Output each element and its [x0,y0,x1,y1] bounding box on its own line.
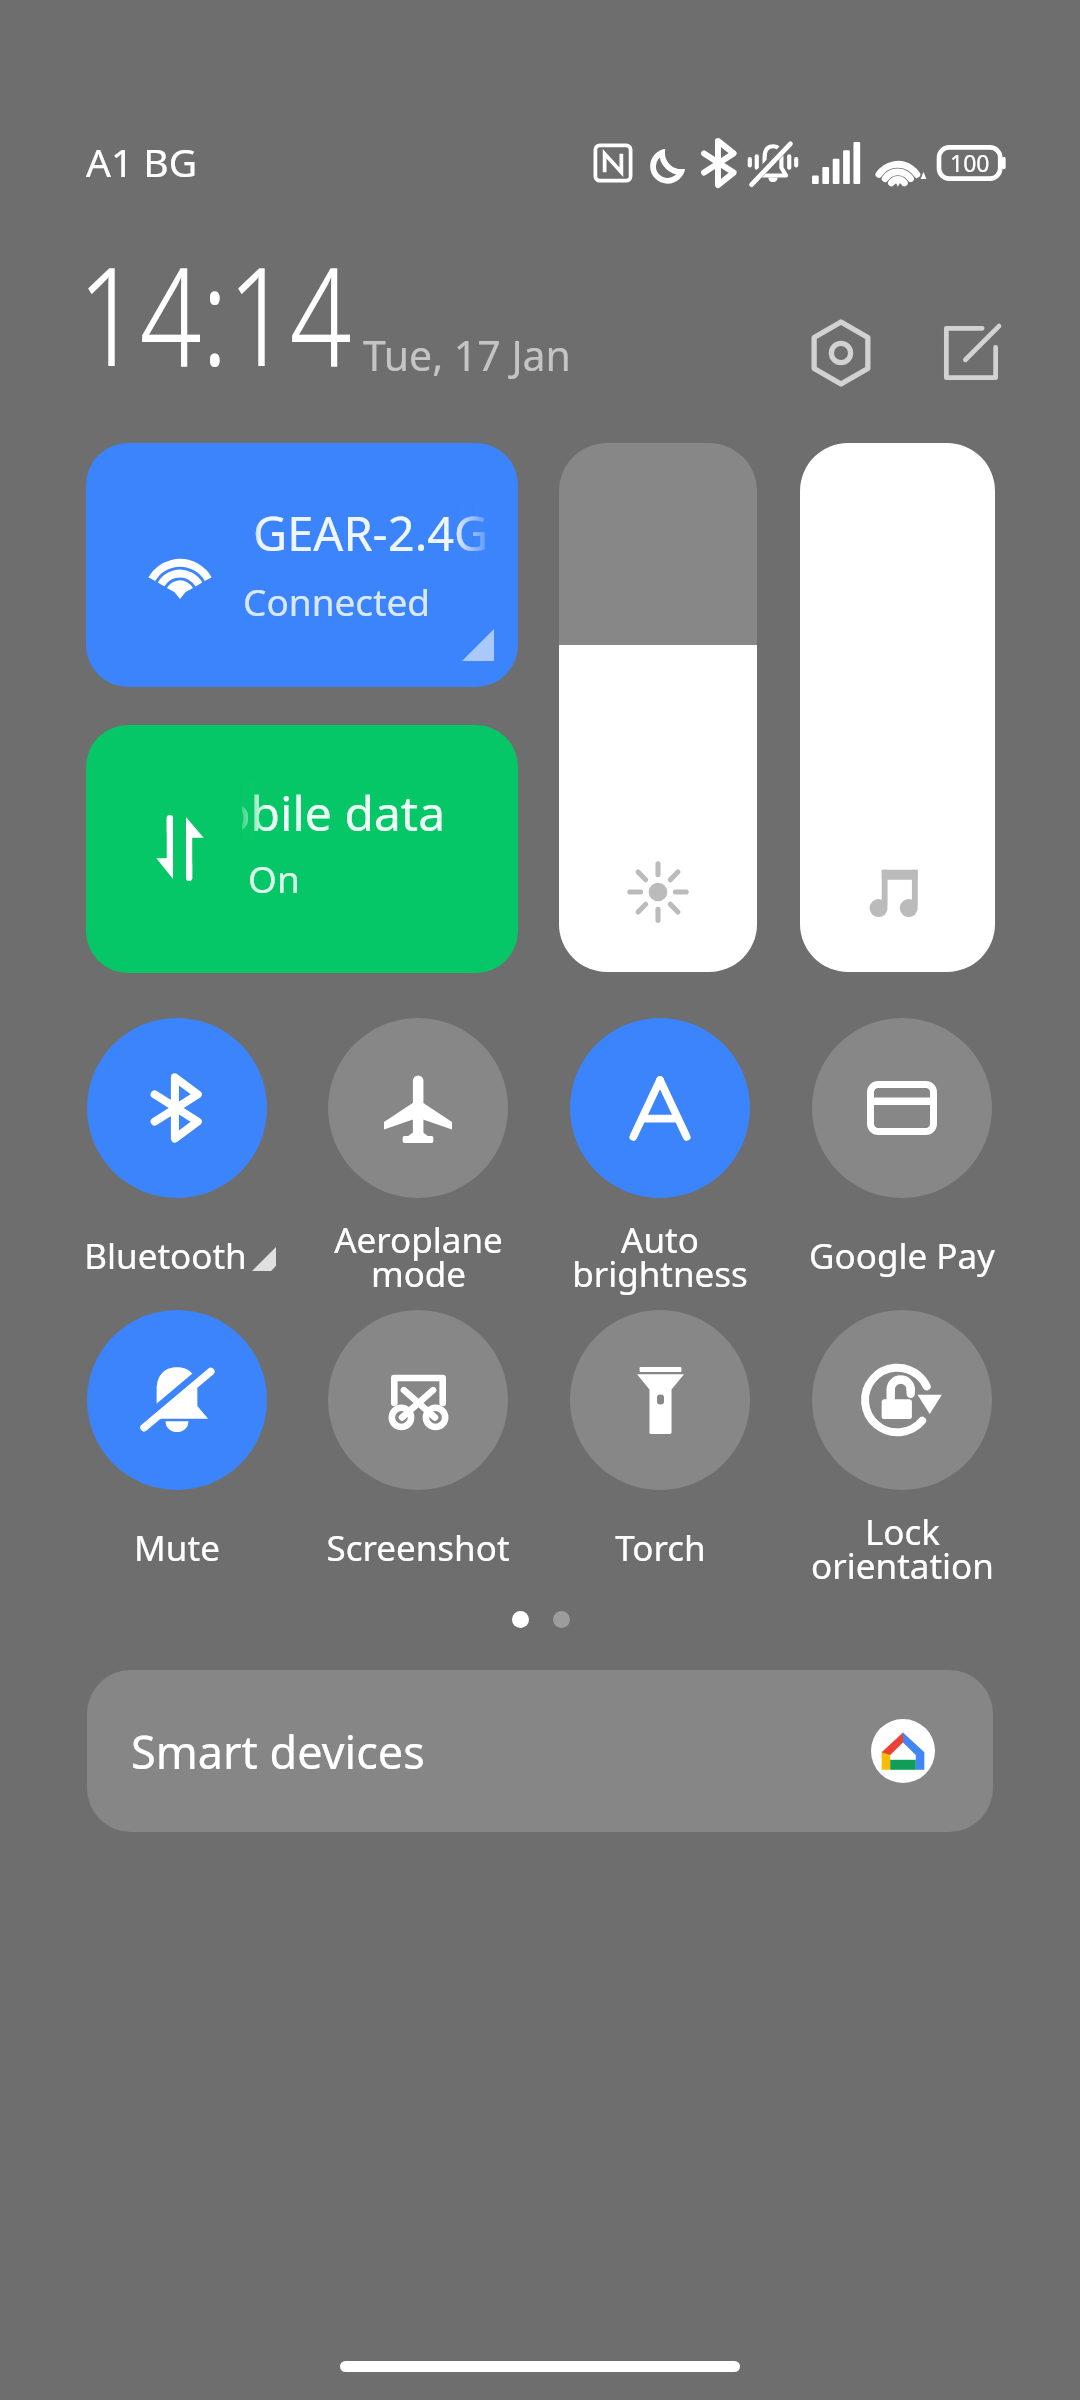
staticText: GEAR-2.4G [253,501,486,559]
staticText: Tue, 17 Jan [363,327,571,383]
staticText: 100 [950,147,990,178]
staticText: Smart devices [131,1721,425,1782]
staticText: Auto brightness [572,1216,748,1297]
button[interactable]: Settings [808,320,874,386]
staticText: Bluetooth [84,1232,247,1280]
staticText: A1 BG [86,135,198,188]
staticText: Lock orientation [811,1508,994,1589]
staticText: Torch [615,1524,706,1572]
button[interactable]: Screenshot [298,1310,538,1595]
staticText: Mute [134,1524,220,1572]
staticText: Aeroplane mode [334,1216,503,1297]
button[interactable]: Google Pay [782,1018,1022,1303]
button[interactable]: Smart devices [87,1670,993,1832]
staticText: Screenshot [326,1524,510,1572]
button[interactable]: Torch [540,1310,780,1595]
button[interactable]: Bluetooth [57,1018,297,1303]
button[interactable]: Mute [57,1310,297,1595]
button[interactable]: Volume [800,443,995,972]
button[interactable]: Brightness [559,443,757,972]
staticText: Mobile data [242,780,446,840]
button[interactable]: Edit [938,320,1004,386]
button[interactable]: Lock orientation [782,1310,1022,1595]
staticText: Google Pay [809,1232,995,1280]
button[interactable]: GEAR-2.4G [86,443,518,687]
button[interactable]: Aeroplane mode [298,1018,538,1303]
staticText: Connected [243,576,431,626]
button[interactable]: Mobile data [86,725,518,973]
staticText: On [248,853,300,903]
staticText: 14:14 [78,220,352,407]
button[interactable]: Auto brightness [540,1018,780,1303]
